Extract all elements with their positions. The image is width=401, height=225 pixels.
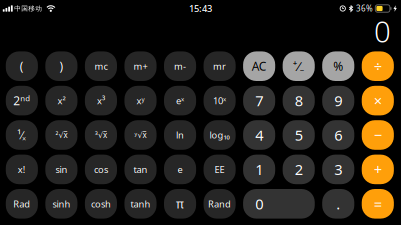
staticText: × bbox=[374, 91, 382, 110]
button[interactable]: 10ˣ bbox=[204, 86, 236, 115]
staticText: cos bbox=[94, 163, 108, 176]
staticText: x³ bbox=[97, 94, 105, 107]
button[interactable]: 6 bbox=[322, 120, 354, 150]
button[interactable]: 4 bbox=[243, 120, 275, 150]
staticText: 0 bbox=[255, 194, 263, 214]
staticText: m- bbox=[174, 60, 186, 72]
button[interactable]: 0 bbox=[243, 189, 315, 219]
staticText: 4 bbox=[255, 125, 263, 145]
staticText: 中国移动 bbox=[14, 4, 42, 13]
button[interactable]: x! bbox=[6, 155, 38, 184]
staticText: 6 bbox=[334, 125, 342, 145]
staticText: e bbox=[178, 163, 183, 176]
staticText: m+ bbox=[133, 60, 147, 72]
button[interactable]: xʸ bbox=[124, 86, 156, 115]
button[interactable]: ÷ bbox=[362, 51, 394, 81]
button[interactable]: cosh bbox=[85, 189, 117, 219]
staticText: ln bbox=[176, 129, 184, 141]
staticText: ³√x̅ bbox=[95, 130, 107, 140]
button[interactable]: 9 bbox=[322, 86, 354, 115]
button[interactable]: ¹⁄ₓ bbox=[6, 120, 38, 150]
staticText: EE bbox=[215, 163, 225, 176]
staticText: mc bbox=[94, 60, 107, 72]
staticText: Rand bbox=[208, 198, 231, 210]
staticText: eˣ bbox=[176, 94, 184, 107]
staticText: sinh bbox=[52, 198, 70, 210]
staticText: x! bbox=[18, 163, 26, 176]
button[interactable]: 7 bbox=[243, 86, 275, 115]
button[interactable]: 2 bbox=[283, 155, 315, 184]
button[interactable]: sin bbox=[45, 155, 77, 184]
button[interactable]: π bbox=[164, 189, 196, 219]
button[interactable]: m- bbox=[164, 51, 196, 81]
staticText: ʸ√x̅ bbox=[134, 130, 146, 140]
button[interactable]: Rand bbox=[204, 189, 236, 219]
staticText: tan bbox=[133, 163, 147, 176]
button[interactable]: sinh bbox=[45, 189, 77, 219]
staticText: π bbox=[176, 196, 184, 212]
button[interactable]: 1 bbox=[243, 155, 275, 184]
button[interactable]: mr bbox=[204, 51, 236, 81]
staticText: ⁺⁄₋ bbox=[293, 57, 305, 75]
staticText: ÷ bbox=[374, 56, 382, 76]
button[interactable]: ( bbox=[6, 51, 38, 81]
button[interactable]: AC bbox=[243, 51, 275, 81]
staticText: 9 bbox=[334, 91, 342, 110]
button[interactable]: 5 bbox=[283, 120, 315, 150]
button[interactable]: ²√x̅ bbox=[45, 120, 77, 150]
staticText: 2ⁿᵈ bbox=[13, 93, 30, 108]
staticText: ( bbox=[20, 58, 24, 74]
button[interactable]: ³√x̅ bbox=[85, 120, 117, 150]
button[interactable]: tan bbox=[124, 155, 156, 184]
button[interactable]: 8 bbox=[283, 86, 315, 115]
staticText: = bbox=[374, 194, 382, 214]
staticText: tanh bbox=[130, 198, 150, 210]
staticText: xʸ bbox=[136, 94, 144, 107]
button[interactable]: . bbox=[322, 189, 354, 219]
staticText: 8 bbox=[295, 91, 303, 110]
staticText: % bbox=[333, 58, 343, 74]
button[interactable]: 3 bbox=[322, 155, 354, 184]
button[interactable]: x² bbox=[45, 86, 77, 115]
button[interactable]: 2ⁿᵈ bbox=[6, 86, 38, 115]
button[interactable]: ln bbox=[164, 120, 196, 150]
button[interactable]: log₁₀ bbox=[204, 120, 236, 150]
button[interactable]: + bbox=[362, 155, 394, 184]
staticText: . bbox=[336, 194, 340, 214]
staticText: 2 bbox=[295, 160, 303, 179]
button[interactable]: ) bbox=[45, 51, 77, 81]
button[interactable]: ʸ√x̅ bbox=[124, 120, 156, 150]
staticText: 10ˣ bbox=[213, 94, 226, 107]
button[interactable]: ⁺⁄₋ bbox=[283, 51, 315, 81]
button[interactable]: − bbox=[362, 120, 394, 150]
staticText: 7 bbox=[255, 91, 263, 110]
button[interactable]: x³ bbox=[85, 86, 117, 115]
staticText: − bbox=[374, 125, 382, 145]
staticText: ¹⁄ₓ bbox=[17, 128, 26, 142]
staticText: log₁₀ bbox=[210, 129, 230, 141]
staticText: 1 bbox=[255, 160, 263, 179]
button[interactable]: e bbox=[164, 155, 196, 184]
button[interactable]: EE bbox=[204, 155, 236, 184]
button[interactable]: = bbox=[362, 189, 394, 219]
staticText: ) bbox=[59, 58, 63, 74]
staticText: sin bbox=[55, 163, 67, 176]
button[interactable]: mc bbox=[85, 51, 117, 81]
button[interactable]: × bbox=[362, 86, 394, 115]
button[interactable]: m+ bbox=[124, 51, 156, 81]
button[interactable]: eˣ bbox=[164, 86, 196, 115]
staticText: 15:43 bbox=[189, 2, 212, 15]
staticText: mr bbox=[213, 60, 226, 72]
staticText: AC bbox=[252, 58, 267, 74]
button[interactable]: % bbox=[322, 51, 354, 81]
button[interactable]: cos bbox=[85, 155, 117, 184]
staticText: 5 bbox=[295, 125, 303, 145]
button[interactable]: Rad bbox=[6, 189, 38, 219]
staticText: cosh bbox=[91, 198, 111, 210]
staticText: 3 bbox=[334, 160, 342, 179]
staticText: ²√x̅ bbox=[55, 130, 67, 140]
staticText: 0 bbox=[374, 11, 391, 50]
staticText: Rad bbox=[13, 198, 30, 210]
button[interactable]: tanh bbox=[124, 189, 156, 219]
staticText: 36% bbox=[356, 3, 373, 14]
